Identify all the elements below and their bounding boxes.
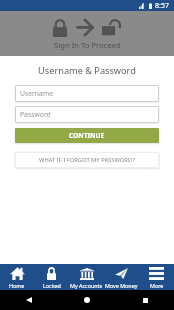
button[interactable]: Username xyxy=(15,85,159,102)
button[interactable]: Recent apps xyxy=(116,290,174,310)
button[interactable]: Move Money xyxy=(104,264,139,290)
button[interactable]: Home xyxy=(58,290,116,310)
staticText: Locked xyxy=(43,282,61,289)
staticText: Username & Password xyxy=(0,64,174,77)
button[interactable]: More xyxy=(139,264,174,290)
staticText: Home xyxy=(9,282,25,289)
staticText: Password xyxy=(20,110,51,119)
button[interactable]: WHAT IF I FORGOT MY PASSWORD? xyxy=(15,152,159,168)
staticText: More xyxy=(150,282,164,289)
staticText: 8:57 xyxy=(155,1,169,11)
staticText: Move Money xyxy=(105,282,138,289)
button[interactable]: Locked xyxy=(34,264,69,290)
staticText: CONTINUE xyxy=(69,131,105,140)
staticText: WHAT IF I FORGOT MY PASSWORD? xyxy=(39,156,135,164)
button[interactable]: CONTINUE xyxy=(15,128,159,143)
staticText: Username xyxy=(20,89,54,98)
button[interactable]: Password xyxy=(15,106,159,123)
button[interactable]: My Accounts xyxy=(69,264,104,290)
staticText: Sign In To Proceed xyxy=(54,40,121,50)
button[interactable]: Home xyxy=(0,264,34,290)
button[interactable]: Back xyxy=(0,290,58,310)
staticText: My Accounts xyxy=(70,282,103,289)
